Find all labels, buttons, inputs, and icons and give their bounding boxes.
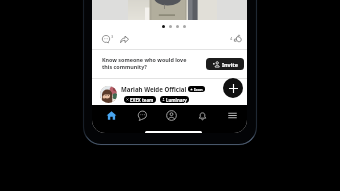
staticText: 3 [111, 34, 114, 39]
staticText: Luminary [166, 97, 187, 103]
staticText: Know someone who would love [102, 56, 187, 63]
button[interactable]: Like [230, 34, 242, 42]
button[interactable]: Comments [102, 35, 110, 43]
button[interactable]: Icon badge [190, 86, 203, 92]
button[interactable]: Create post [223, 78, 243, 98]
staticText: Icon [194, 87, 203, 92]
staticText: Mariah Weide Official [121, 85, 187, 93]
button[interactable]: Notifications [197, 110, 208, 121]
button[interactable]: Menu [227, 110, 238, 121]
button[interactable]: Avatar [100, 86, 117, 103]
button[interactable]: Share [120, 35, 129, 44]
staticText: 4 [230, 36, 233, 41]
button[interactable]: Profile [166, 110, 177, 121]
staticText: Invite [222, 61, 238, 68]
button[interactable]: Luminary [162, 96, 187, 103]
staticText: EXEX team [130, 97, 154, 103]
button[interactable]: EXEX team [126, 96, 154, 103]
button[interactable]: Messages [137, 110, 148, 121]
button[interactable]: Home [106, 110, 117, 121]
button[interactable]: Invite [206, 58, 244, 70]
staticText: this community? [102, 63, 147, 70]
